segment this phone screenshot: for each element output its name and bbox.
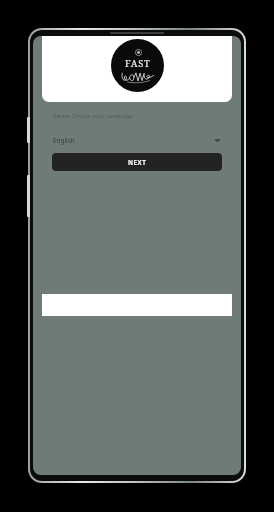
- other: Expand language list: [214, 138, 221, 143]
- staticText: English: [53, 136, 75, 145]
- staticText: FAST: [125, 57, 151, 70]
- button[interactable]: NEXT: [52, 153, 222, 171]
- staticText: NEXT: [128, 158, 147, 166]
- button[interactable]: English: [47, 131, 227, 149]
- staticText: Please Choose your Language: [53, 112, 133, 120]
